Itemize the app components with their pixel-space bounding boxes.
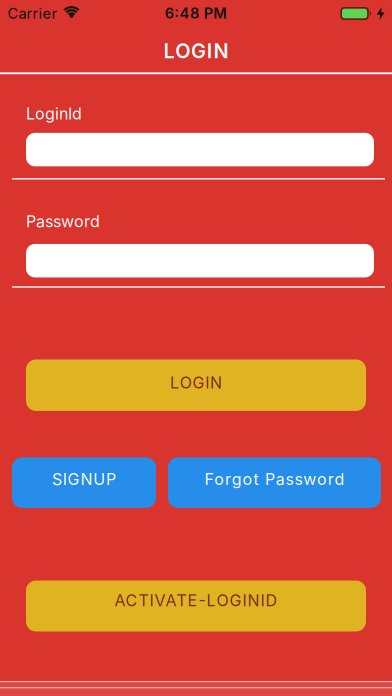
staticText: LOGIN [170, 373, 222, 392]
button[interactable]: ACTIVATE-LOGINID [26, 580, 366, 631]
staticText: 6:48 PM [165, 4, 227, 22]
button[interactable]: Password [26, 244, 374, 277]
staticText: Carrier [7, 5, 57, 22]
button[interactable]: SIGNUP [12, 457, 156, 508]
staticText: LOGIN [163, 39, 229, 63]
staticText: ACTIVATE-LOGINID [114, 591, 277, 610]
button[interactable]: Forgot Password [168, 457, 381, 508]
staticText: SIGNUP [52, 470, 116, 489]
button[interactable]: LOGIN [26, 359, 366, 411]
staticText: Forgot Password [204, 470, 345, 489]
staticText: LoginId [26, 104, 82, 123]
staticText: Password [26, 212, 100, 231]
button[interactable]: LoginId [26, 133, 374, 166]
